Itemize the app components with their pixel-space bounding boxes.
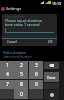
staticText: Video duration [3,50,26,54]
button[interactable]: 4 [0,70,14,79]
staticText: Please input duration [5,18,43,23]
staticText: Settings [6,6,22,11]
staticText: 8 [20,81,23,88]
button[interactable]: 0 [14,89,28,99]
staticText: 1 [6,62,9,69]
button[interactable]: OK [43,38,57,45]
staticText: 0 [20,91,23,98]
button[interactable]: 7 [0,80,14,89]
staticText: Done [47,75,56,80]
button[interactable]: Done [44,72,59,82]
button[interactable]: Enter [44,90,59,100]
staticText: 3 [35,62,38,69]
staticText: 5 [20,71,23,78]
staticText: time value 1 second [5,22,40,27]
button[interactable]: Cancel [5,38,19,45]
staticText: Cancel [7,40,17,44]
staticText: 4 [6,71,9,78]
button[interactable]: 9 [29,80,43,89]
button[interactable]: 6 [29,70,43,79]
button[interactable]: 8 [14,80,28,89]
staticText: OK [48,40,53,44]
button[interactable]: 3 [29,61,43,70]
button[interactable]: Backspace [44,62,59,69]
staticText: Video duration [5,15,25,19]
button[interactable]: 5 [14,70,28,79]
button[interactable]: 1 [0,61,14,70]
staticText: 9 [35,81,38,88]
button[interactable]: 2 [14,61,28,70]
staticText: 2 [20,62,23,69]
staticText: 16:19 [52,1,61,6]
staticText: 6 [35,71,38,78]
staticText: Video record duration [3,55,32,59]
staticText: 7 [6,81,9,88]
